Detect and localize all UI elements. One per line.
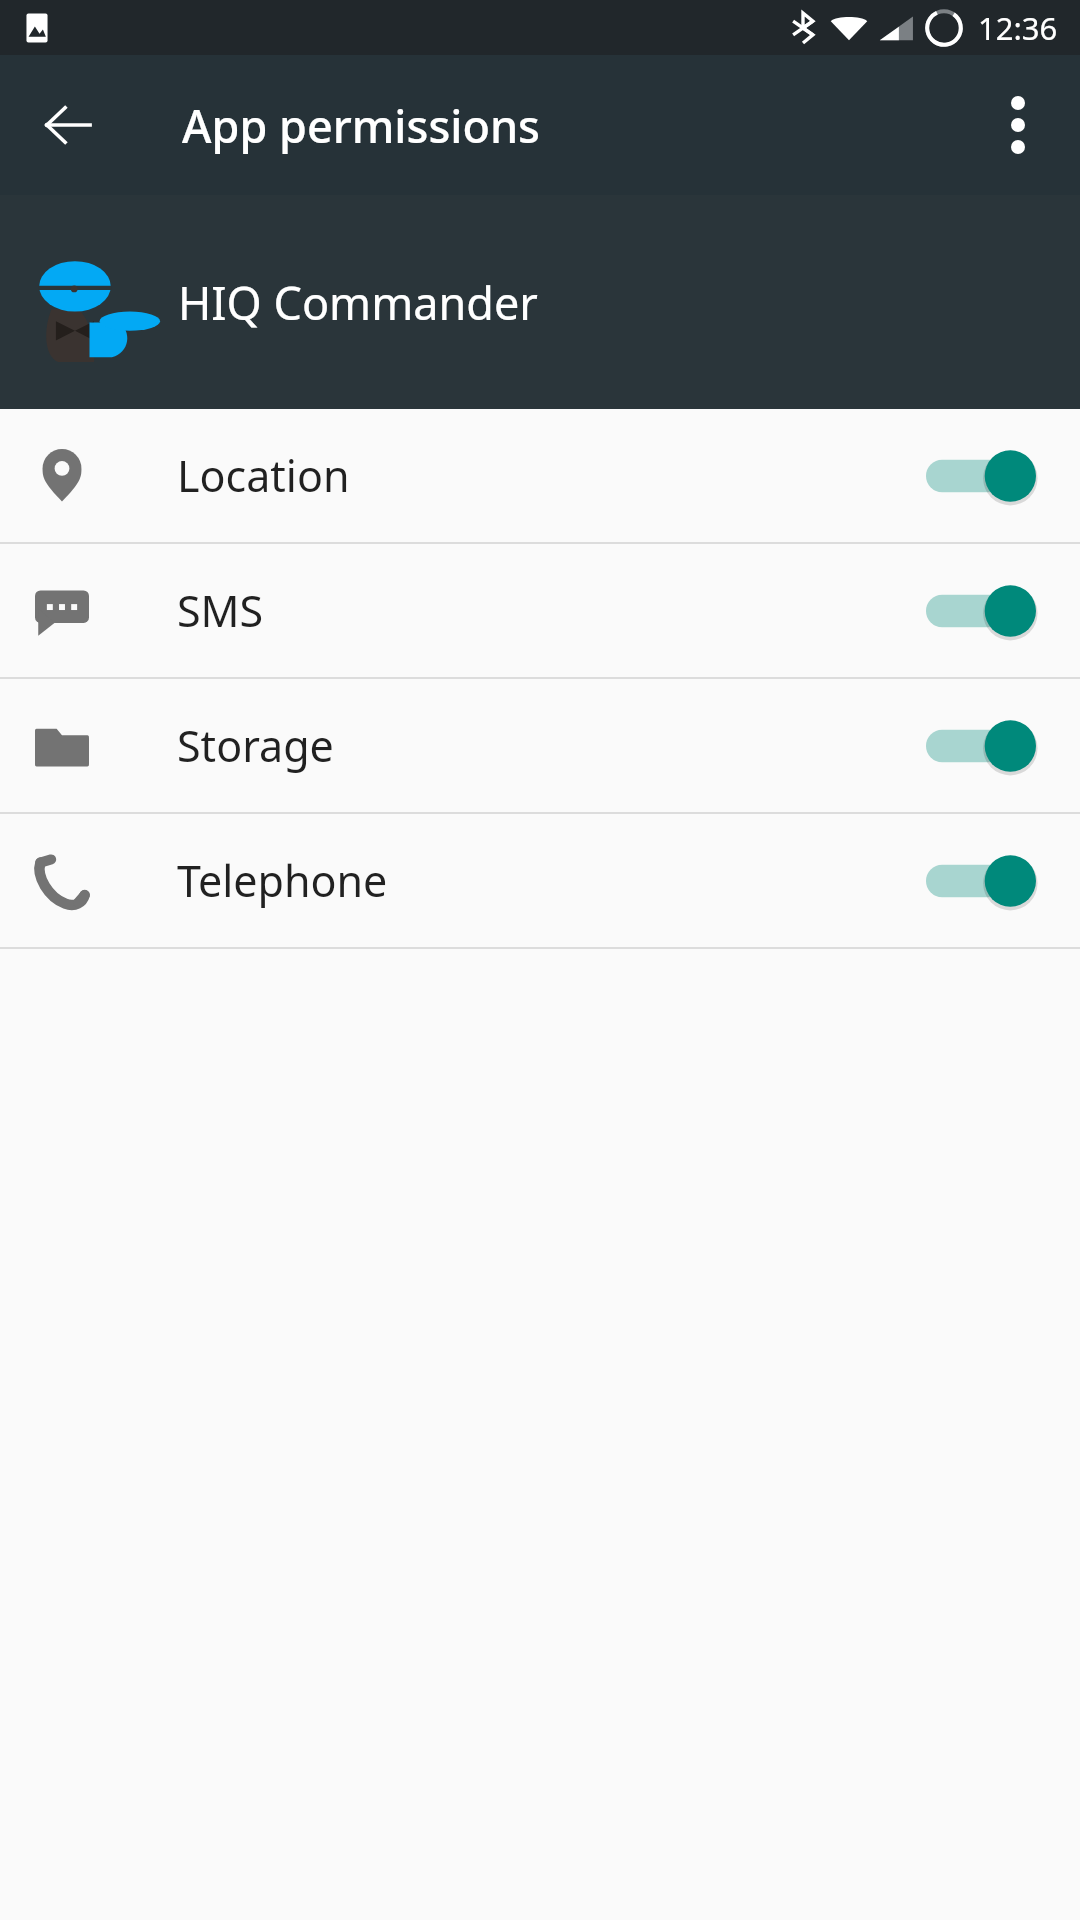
button[interactable]: Storage — [0, 679, 1080, 812]
staticText: Location — [177, 446, 350, 505]
button[interactable]: More options — [976, 83, 1060, 167]
button[interactable]: HIQ Commander — [0, 195, 1080, 409]
button[interactable]: Location — [0, 409, 1080, 542]
button[interactable]: Back — [26, 83, 110, 167]
button[interactable]: Storage permission toggle — [926, 701, 1036, 791]
staticText: HIQ Commander — [178, 272, 538, 333]
button[interactable]: Telephone — [0, 814, 1080, 947]
staticText: 12:36 — [978, 7, 1058, 49]
staticText: Storage — [177, 716, 334, 775]
staticText: App permissions — [182, 95, 540, 156]
button[interactable]: SMS permission toggle — [926, 566, 1036, 656]
button[interactable]: Location permission toggle — [926, 431, 1036, 521]
staticText: SMS — [177, 581, 264, 640]
button[interactable]: Telephone permission toggle — [926, 836, 1036, 926]
button[interactable]: SMS — [0, 544, 1080, 677]
staticText: Telephone — [177, 851, 388, 910]
